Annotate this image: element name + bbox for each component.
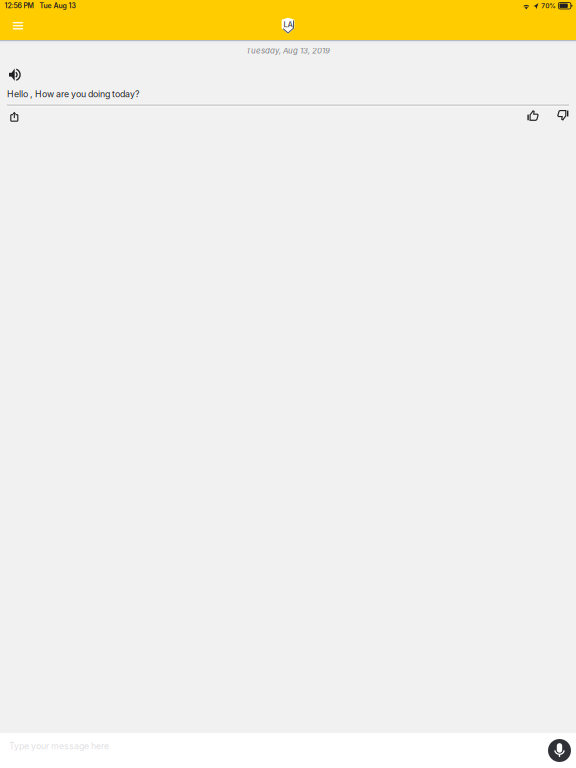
- button[interactable]: Message text field: [0, 733, 576, 759]
- button[interactable]: Share: [0, 108, 27, 122]
- staticText: 70%: [541, 2, 556, 10]
- staticText: LA: [283, 20, 292, 29]
- button[interactable]: Menu: [6, 11, 30, 40]
- staticText: Tue Aug 13: [40, 2, 76, 10]
- button[interactable]: Record voice message: [543, 734, 576, 767]
- staticText: Type your message here: [9, 741, 109, 751]
- button[interactable]: Home: [273, 11, 303, 40]
- button[interactable]: Like: [522, 108, 544, 122]
- button[interactable]: Dislike: [552, 108, 574, 122]
- staticText: Tuesday, Aug 13, 2019: [246, 46, 330, 55]
- staticText: Hello , How are you doing today?: [7, 89, 139, 99]
- button[interactable]: Play message aloud: [0, 67, 29, 84]
- staticText: 12:56 PM: [5, 2, 34, 10]
